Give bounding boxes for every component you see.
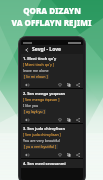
button[interactable]: 1. Meni tinch qo'y: [21, 54, 83, 88]
staticText: Sevgi - Love: [32, 46, 62, 53]
staticText: [ ay layk yu ]: [24, 109, 45, 114]
button[interactable]: 3. Sen juda chiroylisan: [21, 124, 83, 158]
button[interactable]: Play pronunciation: [23, 116, 30, 123]
staticText: 4. Sen meni sevasanmi: [23, 161, 66, 166]
button[interactable]: Copy: [65, 151, 72, 158]
button[interactable]: Share: [74, 116, 81, 123]
button[interactable]: 2. Sen menga yoqasan: [21, 89, 83, 123]
staticText: [ Sen menga ёqasan ]: [23, 97, 60, 102]
staticText: You are very beautiful: [23, 138, 60, 143]
staticText: VA OFFLAYN REJIMI: [11, 17, 92, 28]
staticText: [ yu a veri byutiful ]: [24, 144, 57, 149]
button[interactable]: Copy: [65, 81, 72, 88]
button[interactable]: 4. Sen meni sevasanmi: [21, 159, 83, 168]
button[interactable]: Play pronunciation: [23, 151, 30, 158]
button[interactable]: Share: [74, 151, 81, 158]
button[interactable]: Share: [74, 81, 81, 88]
staticText: I like you: [23, 103, 39, 108]
button[interactable]: Add to favourites: [56, 151, 63, 158]
staticText: [ Sen juda chiroylisan ]: [23, 132, 61, 137]
staticText: leave me alone: [23, 68, 49, 73]
button[interactable]: Copy: [65, 116, 72, 123]
staticText: QORA DIZAYN: [23, 5, 81, 16]
staticText: 3. Sen juda chiroylisan: [23, 126, 65, 131]
button[interactable]: Add to favourites: [56, 116, 63, 123]
staticText: [ liv mi eloun ]: [24, 74, 48, 79]
button[interactable]: Back: [23, 46, 30, 53]
staticText: 2. Sen menga yoqasan: [23, 91, 66, 96]
button[interactable]: Play pronunciation: [23, 81, 30, 88]
staticText: 1. Meni tinch qo'y: [23, 56, 57, 61]
staticText: [ Mieni tinch qo'y ]: [23, 62, 54, 67]
button[interactable]: Add to favourites: [56, 81, 63, 88]
